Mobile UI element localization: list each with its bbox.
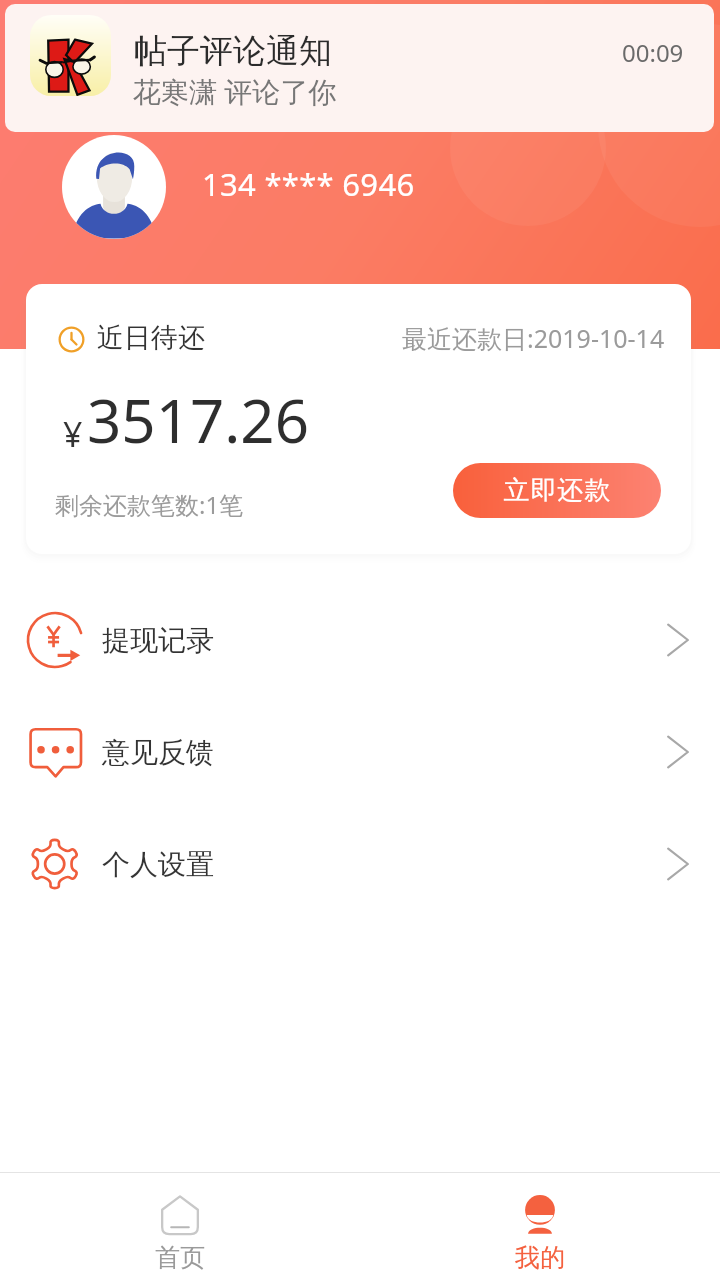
button[interactable]: 帖子评论通知 xyxy=(5,4,714,132)
button[interactable]: 意见反馈 xyxy=(0,696,720,808)
staticText: 花寒潇 评论了你 xyxy=(133,72,337,110)
button[interactable]: 134 **** 6946 xyxy=(202,163,415,205)
button[interactable]: 首页 xyxy=(0,1173,360,1280)
staticText: 首页 xyxy=(155,1242,205,1273)
staticText: 提现记录 xyxy=(102,623,214,658)
button[interactable]: 我的 xyxy=(360,1173,720,1280)
button[interactable]: 立即还款 xyxy=(453,463,661,518)
staticText: 我的 xyxy=(515,1242,565,1273)
staticText: 3517.26 xyxy=(87,379,309,461)
staticText: ¥ xyxy=(63,411,83,457)
staticText: 个人设置 xyxy=(102,847,214,882)
staticText: 近日待还 xyxy=(97,321,205,355)
button[interactable]: 个人设置 xyxy=(0,808,720,920)
staticText: 立即还款 xyxy=(503,474,611,507)
staticText: 剩余还款笔数:1笔 xyxy=(55,488,244,521)
button[interactable]: 提现记录 xyxy=(0,584,720,696)
staticText: 帖子评论通知 xyxy=(134,30,332,72)
staticText: 最近还款日:2019-10-14 xyxy=(402,321,665,355)
button[interactable]: Profile avatar xyxy=(62,135,166,239)
staticText: 00:09 xyxy=(622,36,684,69)
staticText: 意见反馈 xyxy=(102,735,214,770)
